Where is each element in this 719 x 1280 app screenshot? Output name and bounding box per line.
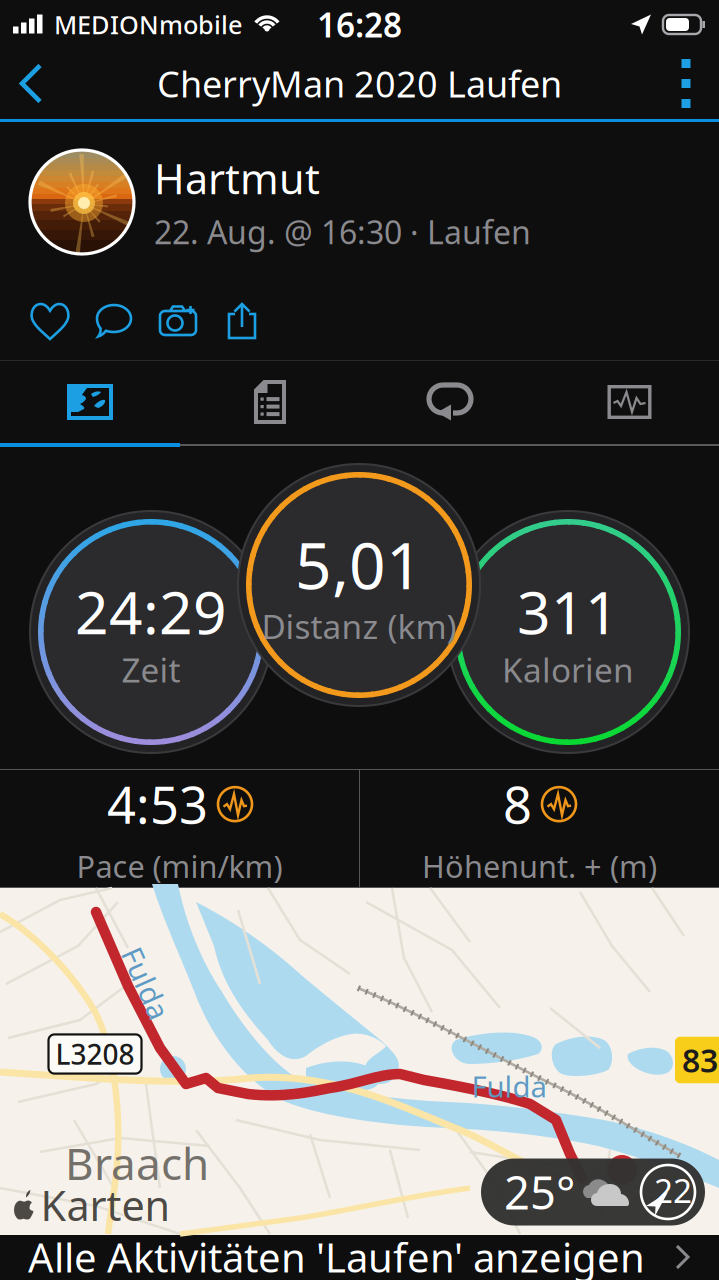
staticText: Pace (min/km)	[76, 846, 282, 886]
staticText: Distanz (km)	[261, 604, 456, 648]
button[interactable]: Comment	[82, 290, 146, 352]
staticText: MEDIONmobile	[54, 8, 243, 41]
staticText: Hartmut	[154, 151, 320, 206]
button[interactable]: Share	[210, 290, 274, 352]
staticText: Höhenunt. + (m)	[422, 846, 657, 886]
staticText: Karten	[40, 1178, 170, 1232]
staticText: 4:53	[107, 770, 208, 838]
button[interactable]: Charts	[540, 361, 719, 443]
staticText: 25°	[504, 1162, 575, 1222]
button[interactable]: More options	[655, 48, 717, 119]
button[interactable]: Alle Aktivitäten 'Laufen' anzeigen	[0, 1235, 719, 1279]
button[interactable]: Like	[18, 290, 82, 352]
staticText: Braach	[65, 1134, 209, 1192]
staticText: 24:29	[75, 572, 227, 650]
button[interactable]: Map	[0, 361, 180, 443]
staticText: 83	[682, 1039, 718, 1081]
staticText: 5,01	[295, 522, 423, 607]
staticText: 8	[503, 770, 532, 838]
staticText: 16:28	[317, 2, 402, 47]
staticText: Fulda	[108, 963, 183, 1002]
staticText: 22	[654, 1168, 692, 1212]
button[interactable]: Laps	[360, 361, 540, 443]
staticText: Fulda	[471, 1066, 546, 1105]
staticText: CherryMan 2020 Laufen	[157, 60, 562, 107]
staticText: Zeit	[121, 647, 180, 692]
button[interactable]: Back	[0, 48, 62, 119]
staticText: 22. Aug. @ 16:30 · Laufen	[154, 211, 531, 253]
button[interactable]: Splits	[180, 361, 360, 443]
staticText: L3208	[55, 1035, 134, 1073]
staticText: Alle Aktivitäten 'Laufen' anzeigen	[28, 1230, 645, 1280]
staticText: 311	[517, 572, 619, 650]
button[interactable]: Add photo	[146, 290, 210, 352]
staticText: Kalorien	[502, 647, 634, 692]
